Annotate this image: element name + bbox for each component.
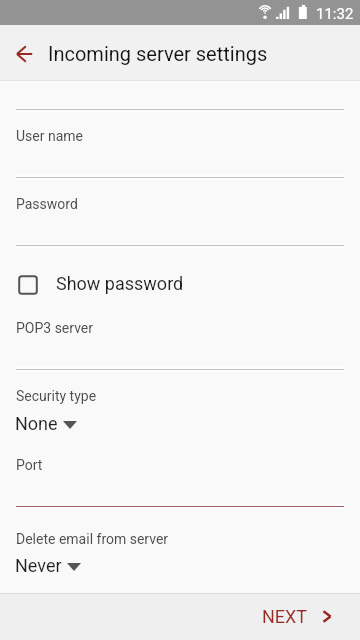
staticText: Delete email from server [16, 531, 169, 547]
button[interactable]: Never [8, 555, 81, 576]
staticText: Port [16, 457, 43, 473]
button[interactable]: Show password [0, 262, 360, 306]
staticText: User name [16, 128, 83, 144]
staticText: Password [16, 196, 78, 212]
button[interactable]: None [8, 413, 77, 434]
staticText: None [15, 413, 58, 434]
staticText: POP3 server [16, 320, 94, 336]
staticText: 11:32 [316, 5, 354, 23]
staticText: Incoming server settings [48, 42, 268, 65]
staticText: Never [15, 555, 62, 576]
staticText: NEXT [262, 606, 308, 627]
staticText: Show password [56, 273, 184, 294]
staticText: Security type [16, 388, 97, 404]
button[interactable]: Back [0, 29, 48, 77]
button[interactable]: NEXT [262, 594, 332, 640]
